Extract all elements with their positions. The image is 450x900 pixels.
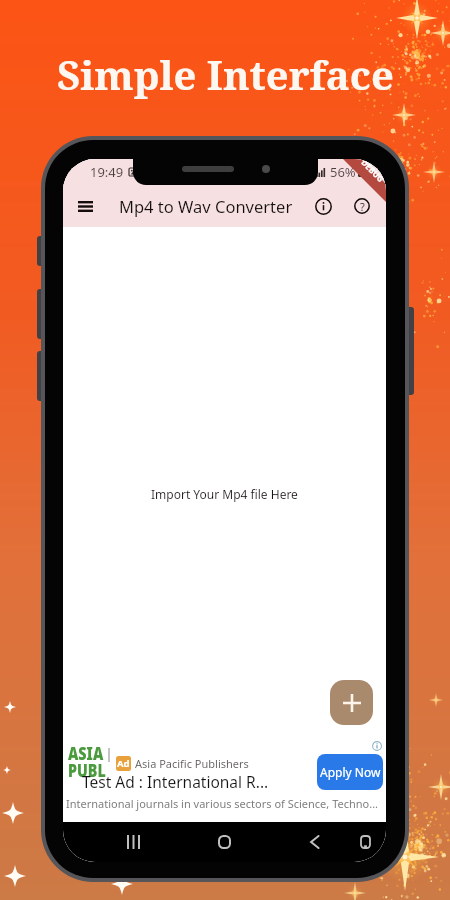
button[interactable]: Info: [309, 192, 337, 220]
button[interactable]: Recent apps: [113, 822, 153, 862]
button[interactable]: Apply Now: [317, 754, 383, 790]
staticText: DEBUG: [359, 159, 386, 184]
staticText: ASIA: [68, 741, 103, 766]
staticText: International journals in various sector…: [66, 796, 379, 811]
button[interactable]: Home: [204, 822, 244, 862]
button[interactable]: Add file: [330, 680, 373, 725]
staticText: Mp4 to Wav Converter: [119, 195, 293, 217]
button[interactable]: Back: [294, 822, 334, 862]
staticText: 56%: [330, 163, 356, 181]
button[interactable]: Screen: [345, 822, 385, 862]
staticText: Test Ad : International R...: [82, 771, 269, 792]
button[interactable]: Menu: [70, 191, 100, 221]
staticText: 19:49: [90, 163, 124, 181]
staticText: Asia Pacific Publishers: [135, 756, 249, 771]
staticText: PUBL: [68, 758, 106, 783]
staticText: Simple Interface: [57, 47, 394, 101]
staticText: Apply Now: [320, 764, 381, 780]
staticText: Ad: [117, 757, 130, 770]
button[interactable]: Help: [348, 192, 376, 220]
staticText: ?: [360, 199, 365, 214]
staticText: Import Your Mp4 file Here: [151, 486, 298, 502]
